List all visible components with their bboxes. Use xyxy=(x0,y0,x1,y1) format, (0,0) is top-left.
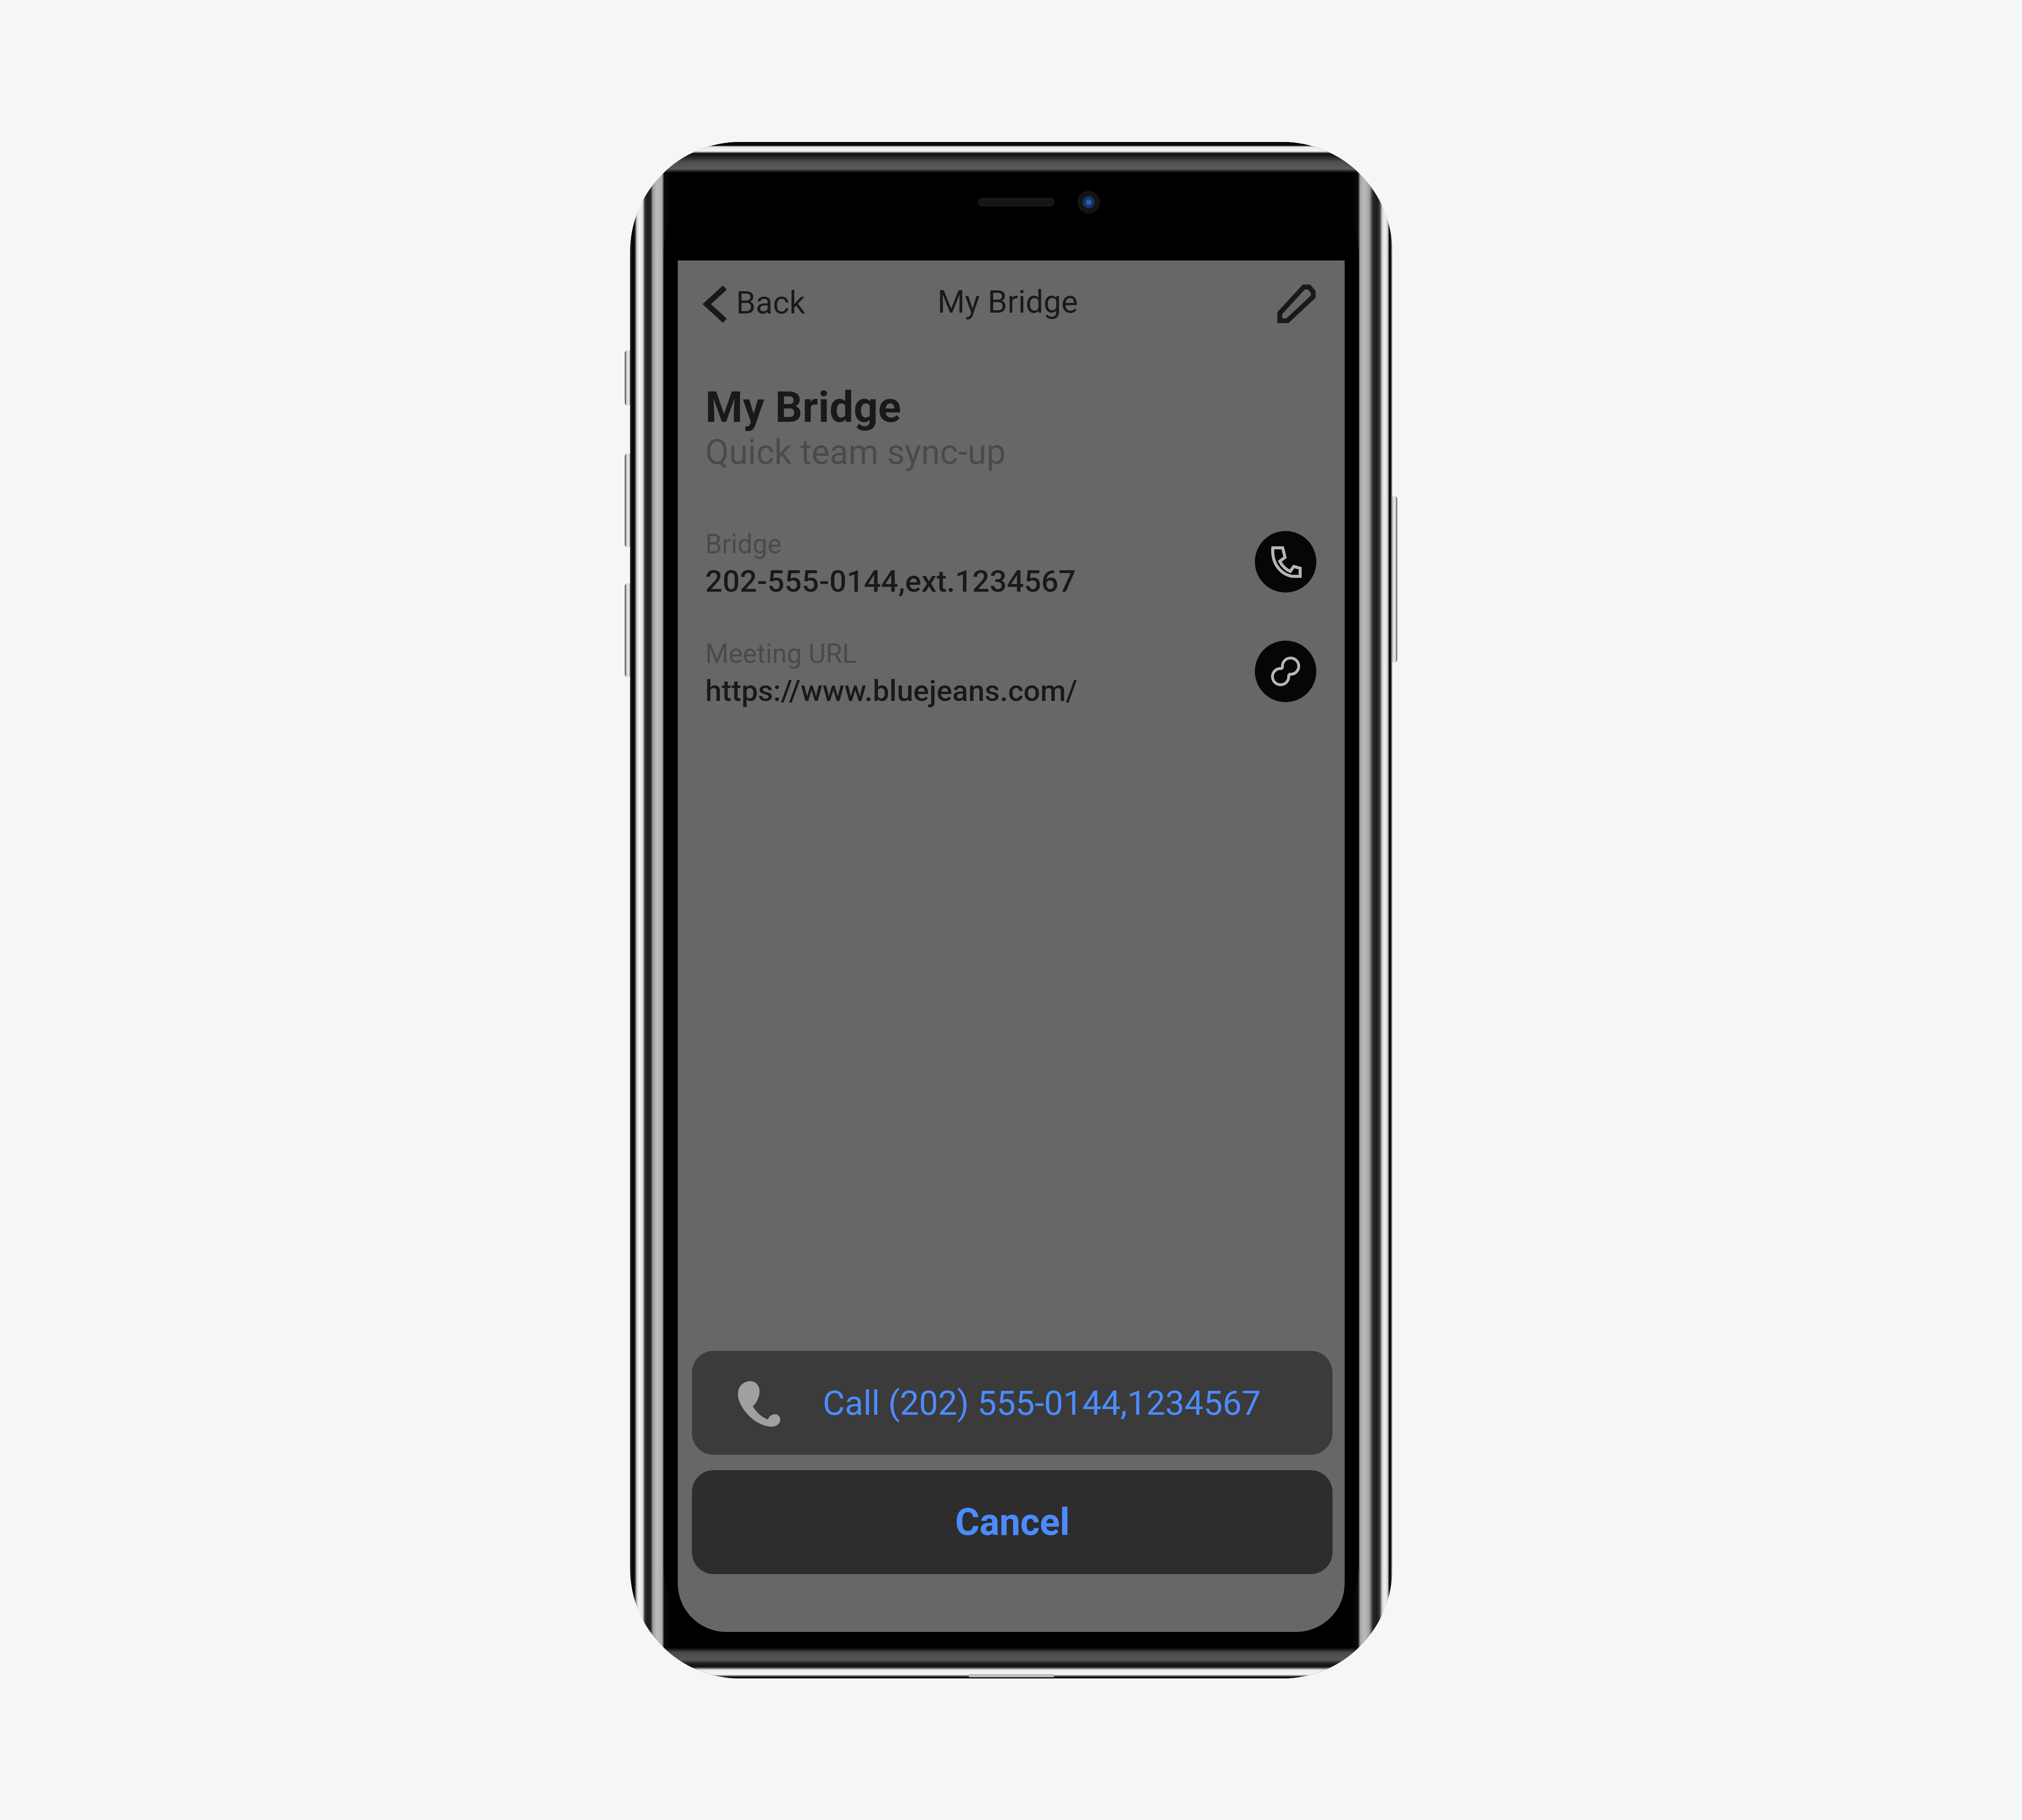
button[interactable]: Call (202) 555-0144,1234567 xyxy=(692,1351,1332,1455)
staticText: https://www.bluejeans.com/ xyxy=(705,673,1078,708)
staticText: Cancel xyxy=(955,1500,1070,1544)
staticText: Meeting URL xyxy=(705,638,857,669)
button[interactable]: Edit xyxy=(1262,269,1331,338)
button[interactable]: Open meeting link xyxy=(1255,641,1316,702)
staticText: My Bridge xyxy=(937,284,1078,320)
staticText: Quick team sync-up xyxy=(705,432,1006,472)
staticText: Call (202) 555-0144,1234567 xyxy=(823,1383,1261,1423)
staticText: 202-555-0144,ext.1234567 xyxy=(705,563,1076,599)
button[interactable]: Cancel xyxy=(692,1470,1332,1574)
staticText: My Bridge xyxy=(705,382,901,432)
staticText: Back xyxy=(736,284,806,321)
staticText: Bridge xyxy=(705,529,782,560)
button[interactable]: Back xyxy=(690,275,819,333)
button[interactable]: Call bridge xyxy=(1255,531,1316,593)
